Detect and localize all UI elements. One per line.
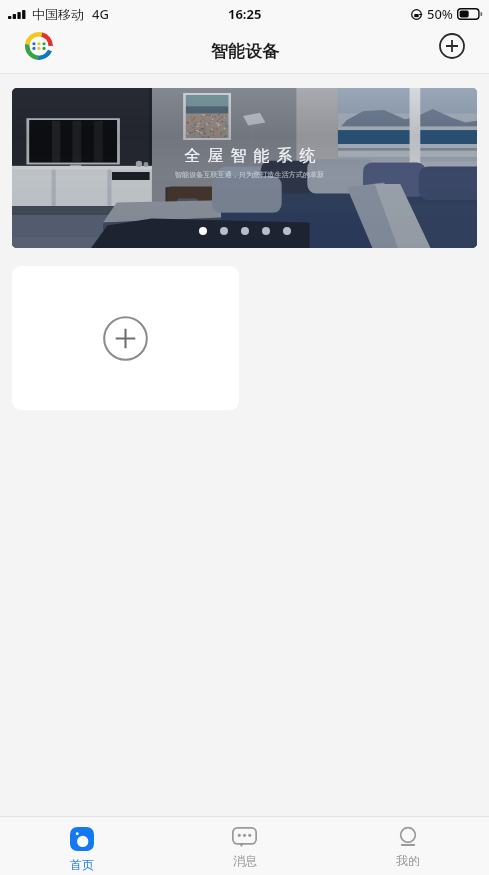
button[interactable]: 全屋智能系统	[12, 88, 477, 248]
button[interactable]: 消息	[163, 817, 326, 875]
staticText: 全屋智能系统	[181, 146, 319, 166]
staticText: 16:25	[228, 5, 262, 23]
staticText: 50%	[427, 5, 453, 23]
staticText: 首页	[70, 857, 94, 872]
button[interactable]: 我的	[326, 817, 489, 875]
staticText: 智能设备	[211, 41, 279, 62]
button[interactable]: 首页	[0, 817, 163, 875]
button[interactable]: Add device	[434, 28, 470, 64]
staticText: 智能设备互联互通，只为您打造生活方式的革新	[175, 170, 325, 179]
staticText: 消息	[233, 853, 257, 868]
button[interactable]: Add device	[12, 266, 239, 410]
staticText: 我的	[396, 853, 420, 868]
staticText: 中国移动	[32, 6, 84, 22]
staticText: 4G	[92, 5, 109, 23]
